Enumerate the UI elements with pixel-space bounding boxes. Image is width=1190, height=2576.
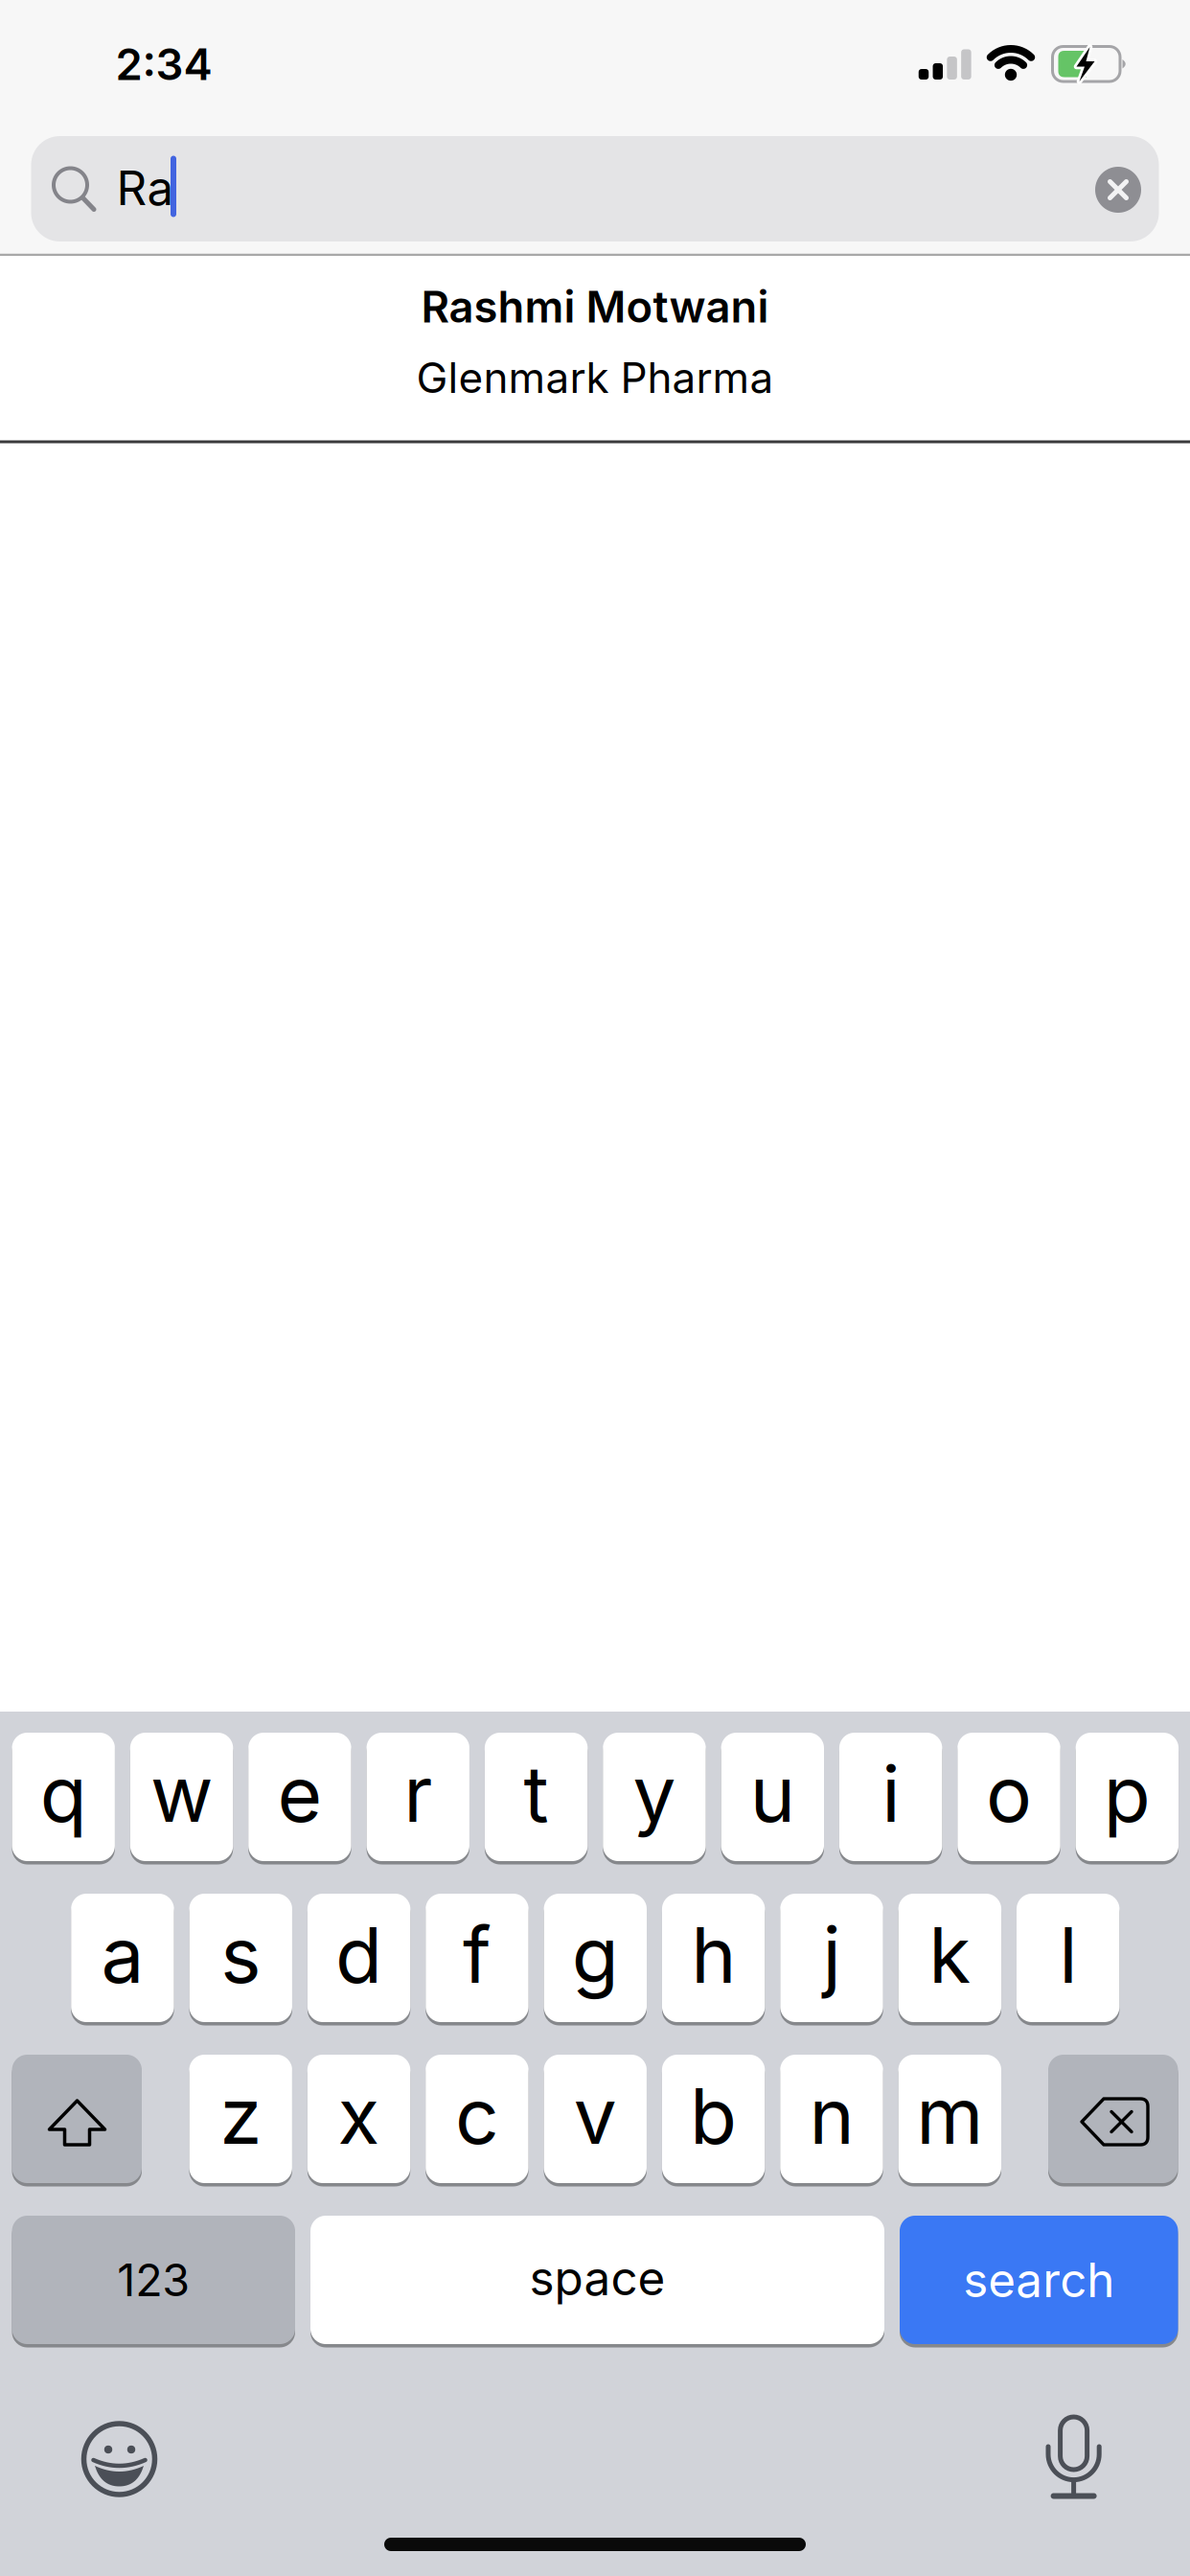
button[interactable]: space — [310, 2214, 884, 2346]
button[interactable]: b — [662, 2053, 765, 2185]
button[interactable]: Clear text — [1095, 167, 1141, 213]
staticText: i — [882, 1749, 900, 1839]
button[interactable]: j — [780, 1892, 883, 2024]
staticText: space — [529, 2250, 665, 2306]
button[interactable]: n — [780, 2053, 883, 2185]
button[interactable]: x — [307, 2053, 410, 2185]
staticText: z — [220, 2071, 262, 2161]
staticText: m — [916, 2071, 983, 2161]
staticText: d — [335, 1910, 382, 2000]
staticText: l — [1059, 1910, 1077, 2000]
button[interactable]: Emoji — [76, 2416, 162, 2502]
staticText: Rashmi Motwani — [421, 281, 769, 332]
button[interactable]: l — [1017, 1892, 1119, 2024]
staticText: h — [691, 1910, 736, 2000]
button[interactable]: r — [366, 1731, 469, 1863]
button[interactable]: Shift — [12, 2053, 142, 2185]
staticText: Ra — [116, 160, 174, 216]
staticText: q — [40, 1749, 87, 1839]
staticText: w — [151, 1749, 213, 1839]
staticText: s — [221, 1910, 261, 2000]
staticText: c — [455, 2071, 499, 2161]
staticText: 2:34 — [115, 39, 212, 90]
button[interactable]: k — [898, 1892, 1001, 2024]
button[interactable]: y — [603, 1731, 706, 1863]
staticText: f — [463, 1910, 491, 2000]
button[interactable]: z — [189, 2053, 292, 2185]
button[interactable]: Search — [31, 136, 1159, 241]
button[interactable]: m — [898, 2053, 1001, 2185]
button[interactable]: v — [544, 2053, 647, 2185]
button[interactable]: o — [957, 1731, 1060, 1863]
button[interactable]: d — [307, 1892, 410, 2024]
staticText: 123 — [117, 2254, 190, 2306]
button[interactable]: 123 — [12, 2214, 295, 2346]
staticText: Glenmark Pharma — [416, 353, 774, 402]
button[interactable]: s — [189, 1892, 292, 2024]
button[interactable]: p — [1076, 1731, 1179, 1863]
staticText: r — [404, 1749, 432, 1839]
staticText: v — [574, 2071, 617, 2161]
button[interactable]: Delete — [1048, 2053, 1178, 2185]
button[interactable]: e — [248, 1731, 351, 1863]
staticText: x — [338, 2071, 380, 2161]
staticText: j — [823, 1910, 841, 2000]
button[interactable]: Dictate — [1031, 2406, 1117, 2502]
staticText: k — [929, 1910, 971, 2000]
staticText: a — [101, 1910, 144, 2000]
button[interactable]: h — [662, 1892, 765, 2024]
staticText: t — [524, 1749, 549, 1839]
button[interactable]: u — [721, 1731, 824, 1863]
button[interactable]: w — [130, 1731, 233, 1863]
button[interactable]: f — [426, 1892, 529, 2024]
button[interactable]: Rashmi Motwani — [0, 256, 1190, 441]
staticText: b — [690, 2071, 737, 2161]
staticText: p — [1104, 1749, 1151, 1839]
button[interactable]: c — [426, 2053, 529, 2185]
button[interactable]: g — [544, 1892, 647, 2024]
staticText: e — [277, 1749, 322, 1839]
button[interactable]: t — [485, 1731, 588, 1863]
staticText: search — [963, 2252, 1114, 2308]
staticText: u — [750, 1749, 795, 1839]
button[interactable]: q — [12, 1731, 115, 1863]
button[interactable]: a — [71, 1892, 174, 2024]
staticText: n — [809, 2071, 854, 2161]
staticText: y — [633, 1749, 676, 1839]
staticText: g — [572, 1910, 619, 2000]
button[interactable]: search — [900, 2214, 1178, 2346]
button[interactable]: i — [839, 1731, 942, 1863]
staticText: o — [986, 1749, 1032, 1839]
